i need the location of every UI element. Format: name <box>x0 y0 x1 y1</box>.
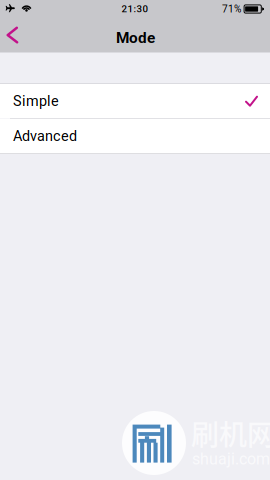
staticText: Advanced <box>13 128 77 145</box>
staticText: Mode <box>116 29 155 47</box>
staticText: shuaji.com <box>192 450 270 468</box>
staticText: 71% <box>222 3 241 15</box>
button[interactable]: Advanced <box>0 119 270 153</box>
staticText: 刷机网 <box>191 413 270 453</box>
staticText: 21:30 <box>121 3 148 15</box>
staticText: Simple <box>13 93 59 110</box>
button[interactable]: Simple <box>0 84 270 118</box>
button[interactable]: Back <box>0 18 32 52</box>
